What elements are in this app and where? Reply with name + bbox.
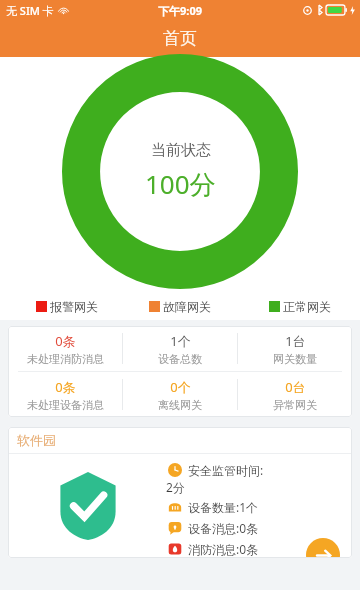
staticText: 消防消息:0条 xyxy=(188,541,259,557)
staticText: 异常网关 xyxy=(273,398,317,412)
staticText: 当前状态 xyxy=(151,141,211,160)
button[interactable]: 1台 xyxy=(238,326,352,371)
staticText: 0条 xyxy=(55,378,76,396)
button[interactable]: 0个 xyxy=(123,372,237,417)
staticText: 1个 xyxy=(170,332,191,350)
button[interactable]: 0条 xyxy=(8,326,122,371)
staticText: 2分 xyxy=(166,479,185,495)
staticText: 1台 xyxy=(285,332,306,350)
staticText: 下午9:09 xyxy=(158,3,202,18)
staticText: 无 SIM 卡 xyxy=(6,3,54,18)
staticText: 未处理设备消息 xyxy=(27,398,104,412)
staticText: 报警网关 xyxy=(50,299,98,314)
staticText: 0个 xyxy=(170,378,191,396)
button[interactable]: 软件园 xyxy=(8,427,352,558)
staticText: 网关数量 xyxy=(273,352,317,366)
button[interactable]: 0条 xyxy=(8,372,122,417)
staticText: 设备数量:1个 xyxy=(188,499,259,515)
staticText: 0台 xyxy=(285,378,306,396)
staticText: 设备总数 xyxy=(158,352,202,366)
staticText: 安全监管时间: xyxy=(188,462,264,478)
staticText: 正常网关 xyxy=(283,299,331,314)
staticText: 100分 xyxy=(145,166,216,202)
staticText: 未处理消防消息 xyxy=(27,352,104,366)
staticText: 设备消息:0条 xyxy=(188,520,259,536)
staticText: 离线网关 xyxy=(158,398,202,412)
staticText: 0条 xyxy=(55,332,76,350)
button[interactable]: 0台 xyxy=(238,372,352,417)
staticText: 软件园 xyxy=(17,432,56,448)
staticText: 故障网关 xyxy=(163,299,211,314)
button[interactable]: 1个 xyxy=(123,326,237,371)
staticText: 首页 xyxy=(163,28,197,49)
button[interactable]: 进入详情 xyxy=(306,538,340,558)
